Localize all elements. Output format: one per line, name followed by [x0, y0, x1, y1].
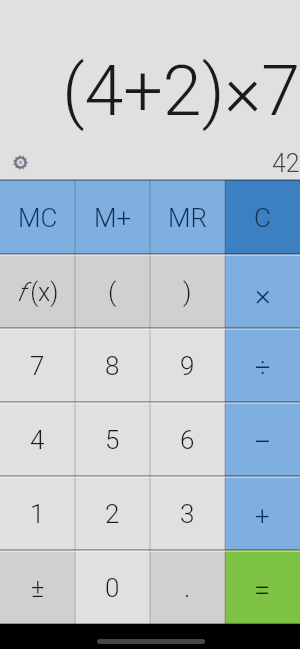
staticText: ( [108, 277, 117, 307]
button[interactable]: 3 [150, 476, 225, 550]
staticText: M+ [94, 203, 132, 233]
staticText: + [255, 501, 270, 531]
staticText: MR [168, 203, 208, 233]
button[interactable]: M+ [75, 180, 150, 254]
button[interactable]: 2 [75, 476, 150, 550]
staticText: C [254, 203, 271, 233]
staticText: 4 [30, 425, 45, 455]
staticText: = [254, 573, 271, 607]
button[interactable]: Settings [7, 149, 33, 175]
staticText: 42 [272, 149, 300, 178]
button[interactable]: . [150, 550, 225, 624]
button[interactable]: = [225, 550, 300, 624]
staticText: 6 [180, 425, 195, 455]
staticText: ± [31, 574, 45, 603]
button[interactable]: 9 [150, 328, 225, 402]
staticText: 8 [105, 351, 120, 381]
button[interactable]: ± [0, 550, 75, 624]
button[interactable]: 7 [0, 328, 75, 402]
button[interactable]: 4 [0, 402, 75, 476]
staticText: MC [18, 203, 58, 233]
staticText: 5 [105, 425, 120, 455]
staticText: × [255, 277, 271, 312]
button[interactable]: ( [75, 254, 150, 328]
button[interactable]: 0 [75, 550, 150, 624]
staticText: 3 [180, 499, 195, 529]
button[interactable]: + [225, 476, 300, 550]
button[interactable]: 1 [0, 476, 75, 550]
button[interactable]: f (x) [0, 254, 75, 328]
button[interactable]: 6 [150, 402, 225, 476]
staticText: 9 [180, 351, 195, 381]
staticText: 1 [30, 499, 45, 529]
button[interactable]: × [225, 254, 300, 328]
button[interactable]: MC [0, 180, 75, 254]
staticText: . [184, 573, 191, 603]
button[interactable]: ÷ [225, 328, 300, 402]
staticText: ÷ [255, 352, 271, 384]
button[interactable]: − [225, 402, 300, 476]
button[interactable]: C [225, 180, 300, 254]
button[interactable]: MR [150, 180, 225, 254]
staticText: − [253, 423, 272, 461]
staticText: (4+2)×7 [62, 50, 300, 132]
button[interactable]: 8 [75, 328, 150, 402]
staticText: 0 [105, 573, 120, 603]
staticText: 7 [30, 351, 45, 381]
button[interactable]: ) [150, 254, 225, 328]
staticText: ) [183, 277, 192, 307]
staticText: f (x) [17, 278, 59, 307]
button[interactable]: 5 [75, 402, 150, 476]
staticText: 2 [105, 499, 120, 529]
